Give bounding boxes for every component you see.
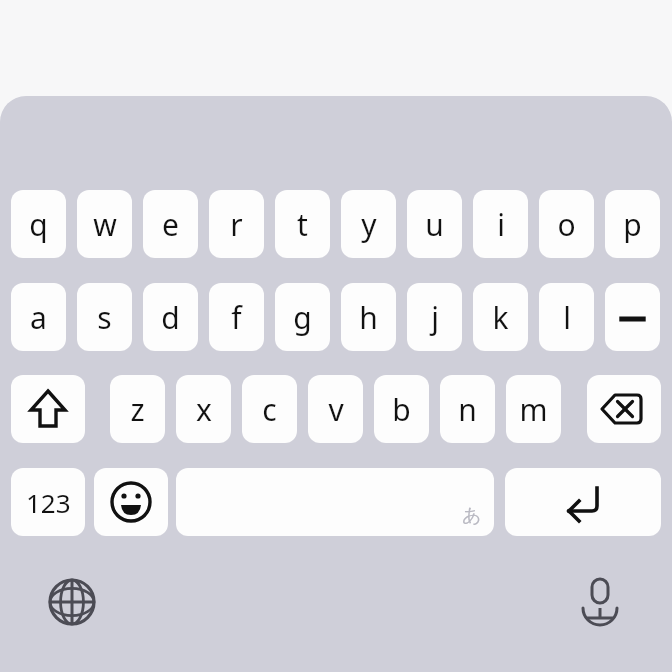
button[interactable]: あ: [176, 468, 494, 536]
staticText: m: [519, 389, 548, 430]
button[interactable]: Emoji: [94, 468, 168, 536]
button[interactable]: a: [11, 283, 66, 351]
button[interactable]: l: [539, 283, 594, 351]
button[interactable]: Backspace: [587, 375, 661, 443]
staticText: l: [563, 297, 571, 338]
button[interactable]: r: [209, 190, 264, 258]
staticText: v: [328, 389, 344, 430]
button[interactable]: g: [275, 283, 330, 351]
button[interactable]: f: [209, 283, 264, 351]
staticText: q: [29, 204, 48, 245]
button[interactable]: y: [341, 190, 396, 258]
button[interactable]: c: [242, 375, 297, 443]
button[interactable]: Shift: [11, 375, 85, 443]
button[interactable]: p: [605, 190, 660, 258]
staticText: 123: [26, 485, 71, 520]
button[interactable]: z: [110, 375, 165, 443]
staticText: e: [162, 204, 179, 245]
staticText: h: [359, 297, 378, 338]
button[interactable]: Change keyboard language: [48, 578, 96, 626]
button[interactable]: e: [143, 190, 198, 258]
button[interactable]: underscore: [605, 283, 660, 351]
staticText: j: [431, 297, 439, 338]
staticText: a: [30, 297, 47, 338]
button[interactable]: h: [341, 283, 396, 351]
button[interactable]: q: [11, 190, 66, 258]
staticText: あ: [462, 504, 482, 528]
button[interactable]: t: [275, 190, 330, 258]
staticText: o: [557, 204, 576, 245]
button[interactable]: w: [77, 190, 132, 258]
staticText: p: [623, 204, 642, 245]
button[interactable]: i: [473, 190, 528, 258]
button[interactable]: m: [506, 375, 561, 443]
button[interactable]: b: [374, 375, 429, 443]
staticText: c: [262, 389, 277, 430]
button[interactable]: u: [407, 190, 462, 258]
staticText: f: [231, 297, 242, 338]
button[interactable]: s: [77, 283, 132, 351]
staticText: g: [293, 297, 312, 338]
button[interactable]: v: [308, 375, 363, 443]
button[interactable]: j: [407, 283, 462, 351]
staticText: n: [458, 389, 477, 430]
button[interactable]: Voice input: [576, 577, 624, 625]
staticText: w: [93, 204, 117, 245]
staticText: z: [130, 389, 145, 430]
staticText: u: [425, 204, 444, 245]
button[interactable]: n: [440, 375, 495, 443]
staticText: x: [196, 389, 212, 430]
staticText: s: [97, 297, 112, 338]
staticText: y: [361, 204, 377, 245]
staticText: k: [492, 297, 509, 338]
staticText: i: [497, 204, 505, 245]
button[interactable]: 123: [11, 468, 85, 536]
button[interactable]: d: [143, 283, 198, 351]
staticText: r: [230, 204, 243, 245]
button[interactable]: k: [473, 283, 528, 351]
button[interactable]: Return: [505, 468, 661, 536]
staticText: b: [392, 389, 411, 430]
button[interactable]: o: [539, 190, 594, 258]
staticText: t: [297, 204, 308, 245]
button[interactable]: x: [176, 375, 231, 443]
staticText: d: [161, 297, 180, 338]
